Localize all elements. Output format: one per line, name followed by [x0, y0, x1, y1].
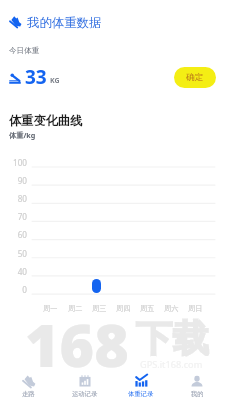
- other: 我的: [191, 375, 203, 387]
- staticText: 走路: [22, 390, 35, 398]
- staticText: 50: [0, 248, 27, 259]
- staticText: 100: [0, 157, 27, 168]
- staticText: 90: [0, 175, 27, 186]
- staticText: 体重变化曲线: [9, 113, 83, 128]
- staticText: 今日体重: [9, 46, 40, 56]
- other: 运动记录: [79, 375, 91, 387]
- staticText: 确定: [186, 72, 204, 83]
- staticText: 33: [25, 64, 47, 90]
- staticText: 下载: [136, 316, 209, 362]
- staticText: 运动记录: [72, 390, 98, 398]
- staticText: 80: [0, 193, 27, 204]
- staticText: 周二: [68, 304, 83, 313]
- staticText: 60: [0, 229, 27, 240]
- staticText: 体重/kg: [9, 130, 36, 140]
- button[interactable]: 体重记录: [113, 370, 169, 400]
- staticText: KG: [50, 76, 60, 86]
- button[interactable]: 运动记录: [57, 370, 113, 400]
- staticText: 周一: [43, 304, 58, 313]
- staticText: 周三: [92, 304, 107, 313]
- staticText: 40: [0, 266, 27, 277]
- staticText: 周四: [116, 304, 131, 313]
- other: 走路: [22, 374, 36, 387]
- staticText: 我的: [191, 390, 204, 398]
- button[interactable]: 我的: [169, 370, 225, 400]
- other: 体重记录: [135, 374, 148, 387]
- staticText: GPS.it168.com: [140, 358, 203, 371]
- staticText: 周五: [140, 304, 155, 313]
- staticText: 我的体重数据: [27, 15, 102, 31]
- staticText: 体重记录: [128, 390, 154, 398]
- staticText: 70: [0, 211, 27, 222]
- staticText: 周日: [188, 304, 203, 313]
- button[interactable]: 走路: [0, 370, 57, 400]
- staticText: 周六: [164, 304, 179, 313]
- button[interactable]: 确定: [174, 67, 216, 88]
- staticText: 168: [25, 304, 129, 384]
- staticText: 0: [0, 284, 27, 295]
